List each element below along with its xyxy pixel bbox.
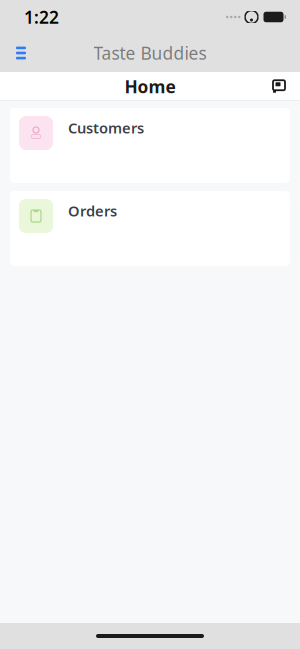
staticText: 1:22 [24,5,59,28]
button[interactable]: Menu [4,36,38,70]
button[interactable]: Orders [10,191,290,266]
button[interactable]: Messages [264,72,294,100]
staticText: Taste Buddies [93,41,206,64]
button[interactable]: Customers [10,108,290,183]
staticText: Orders [68,201,117,220]
staticText: Home [124,75,175,98]
staticText: Customers [68,118,144,137]
